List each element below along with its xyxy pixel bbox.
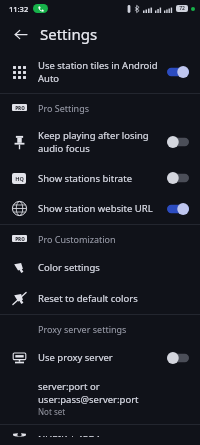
staticText: Pro Settings (38, 102, 90, 114)
staticText: 72 (179, 5, 185, 12)
staticText: Settings (40, 24, 98, 44)
button[interactable]: Back (9, 23, 31, 45)
button[interactable]: Reset to default colors (0, 283, 200, 314)
button[interactable]: HQ (0, 163, 200, 193)
staticText: Show station website URL (38, 202, 161, 215)
button[interactable]: Use station tiles in Android Auto (0, 51, 200, 93)
button[interactable] (167, 351, 189, 365)
button[interactable]: server:port or user:pass@server:port (0, 373, 200, 424)
staticText: Reset to default colors (38, 292, 183, 305)
button[interactable] (167, 171, 189, 185)
button[interactable]: Show station website URL (0, 193, 200, 224)
button[interactable]: Use proxy server (0, 342, 200, 373)
button[interactable] (167, 202, 189, 216)
button[interactable] (167, 65, 189, 79)
staticText: server:port or user:pass@server:port (38, 380, 189, 406)
staticText: 11:32 (9, 4, 29, 14)
staticText: Use proxy server (38, 351, 161, 364)
staticText: Use station tiles in Android Auto (38, 59, 161, 85)
staticText: PRO (15, 105, 25, 111)
staticText: HQ (15, 175, 24, 183)
staticText: Show stations bitrate (38, 172, 161, 185)
staticText: PRO (15, 236, 25, 242)
button[interactable]: Keep playing after losing audio focus (0, 121, 200, 163)
staticText: Color settings (38, 261, 183, 274)
staticText: Proxy server settings (38, 323, 127, 335)
staticText: NURIK | 4PDA (38, 433, 183, 437)
button[interactable]: NURIK | 4PDA (0, 425, 200, 445)
button[interactable] (167, 135, 189, 149)
button[interactable]: Color settings (0, 252, 200, 283)
staticText: Pro Customization (38, 233, 116, 245)
staticText: Not set (38, 406, 66, 417)
staticText: Keep playing after losing audio focus (38, 129, 161, 155)
